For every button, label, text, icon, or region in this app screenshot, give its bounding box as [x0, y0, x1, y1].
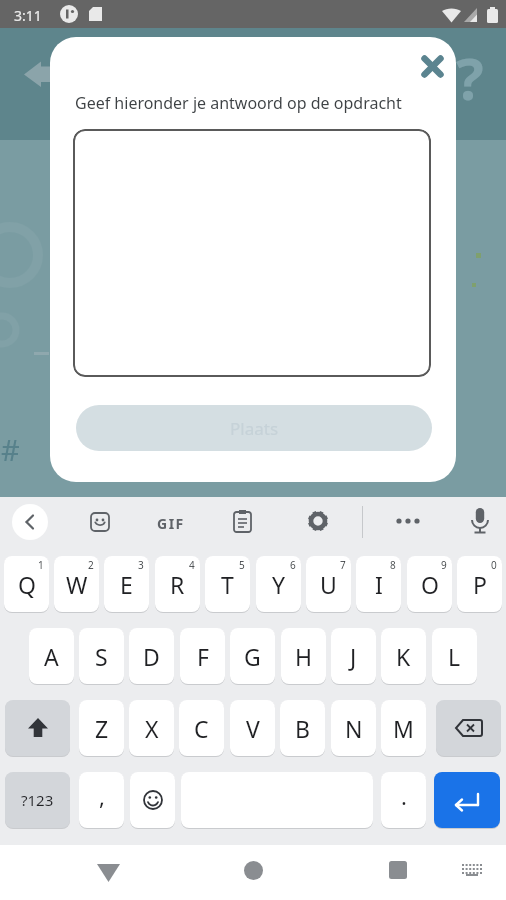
staticText: 3:11 [14, 6, 42, 25]
button[interactable]: L [432, 628, 477, 684]
button[interactable]: Z [79, 700, 124, 756]
staticText: 4 [189, 558, 195, 572]
staticText: J [350, 641, 357, 672]
button[interactable] [5, 700, 70, 756]
staticText: 3 [138, 558, 144, 572]
button[interactable]: P [457, 556, 502, 612]
staticText: Plaats [230, 417, 279, 440]
button[interactable] [232, 509, 254, 534]
staticText: ?123 [21, 790, 54, 810]
button[interactable]: A [29, 628, 74, 684]
button[interactable]: S [79, 628, 124, 684]
button[interactable] [452, 850, 492, 890]
button[interactable]: B [280, 700, 325, 756]
staticText: D [143, 641, 160, 672]
staticText: T [221, 569, 234, 600]
button[interactable]: T [205, 556, 250, 612]
button[interactable] [130, 772, 175, 828]
staticText: Z [95, 713, 109, 744]
button[interactable]: Q [4, 556, 49, 612]
staticText: S [95, 641, 108, 672]
button[interactable] [12, 504, 48, 540]
button[interactable] [88, 853, 128, 893]
button[interactable]: I [356, 556, 401, 612]
staticText: W [66, 569, 88, 600]
staticText: ? [456, 38, 484, 117]
button[interactable] [306, 509, 330, 533]
button[interactable] [88, 510, 112, 534]
staticText: 7 [340, 558, 346, 572]
button[interactable]: D [129, 628, 174, 684]
button[interactable]: V [230, 700, 275, 756]
button[interactable]: ?123 [5, 772, 70, 828]
staticText: A [44, 641, 59, 672]
staticText: M [393, 713, 414, 744]
staticText: E [120, 569, 133, 600]
button[interactable]: N [331, 700, 376, 756]
staticText: I [375, 569, 383, 600]
button[interactable]: O [407, 556, 452, 612]
staticText: L [448, 641, 461, 672]
staticText: , [99, 781, 105, 811]
button[interactable]: Y [256, 556, 301, 612]
staticText: O [421, 569, 439, 600]
staticText: Geef hieronder je antwoord op de opdrach… [75, 92, 402, 114]
button[interactable]: W [54, 556, 99, 612]
staticText: B [295, 713, 310, 744]
staticText: U [320, 569, 337, 600]
staticText: K [396, 641, 411, 672]
button[interactable] [410, 44, 454, 88]
staticText: 1 [38, 558, 44, 572]
button[interactable] [378, 850, 418, 890]
staticText: 2 [88, 558, 94, 572]
staticText: . [401, 781, 407, 811]
button[interactable]: , [79, 772, 124, 828]
button[interactable] [73, 129, 431, 377]
button[interactable]: M [381, 700, 426, 756]
staticText: V [246, 713, 260, 744]
button[interactable]: GIF [157, 514, 185, 533]
button[interactable]: H [281, 628, 326, 684]
staticText: Y [272, 569, 286, 600]
staticText: F [197, 641, 209, 672]
button[interactable] [436, 700, 501, 756]
button[interactable]: G [230, 628, 275, 684]
staticText: Q [18, 569, 36, 600]
button[interactable]: Plaats [76, 405, 432, 451]
staticText: C [194, 713, 209, 744]
staticText: X [145, 713, 159, 744]
staticText: 8 [390, 558, 396, 572]
staticText: G [244, 641, 261, 672]
button[interactable] [233, 850, 273, 890]
staticText: 0 [491, 558, 497, 572]
button[interactable]: R [155, 556, 200, 612]
staticText: 6 [290, 558, 296, 572]
button[interactable]: C [179, 700, 224, 756]
staticText: R [170, 569, 185, 600]
button[interactable]: J [331, 628, 376, 684]
staticText: H [295, 641, 313, 672]
button[interactable]: U [306, 556, 351, 612]
staticText: P [473, 569, 487, 600]
button[interactable]: . [381, 772, 426, 828]
button[interactable] [468, 507, 492, 537]
staticText: # [1, 430, 20, 469]
staticText: 9 [441, 558, 447, 572]
button[interactable]: K [381, 628, 426, 684]
button[interactable] [434, 772, 500, 828]
button[interactable] [394, 509, 422, 533]
button[interactable]: X [129, 700, 174, 756]
staticText: 5 [239, 558, 245, 572]
staticText: N [345, 713, 363, 744]
button[interactable]: E [104, 556, 149, 612]
button[interactable]: F [180, 628, 225, 684]
